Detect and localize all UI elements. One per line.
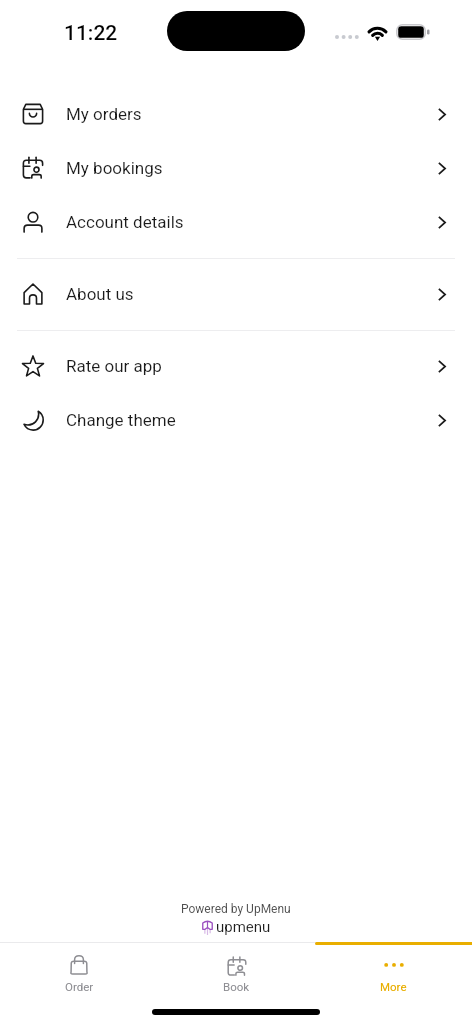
button[interactable]: Book <box>158 942 315 1000</box>
staticText: Change theme <box>66 410 176 430</box>
staticText: upmenu <box>216 918 271 936</box>
staticText: My orders <box>66 104 142 124</box>
staticText: Powered by UpMenu <box>181 902 291 916</box>
staticText: Order <box>65 980 94 993</box>
staticText: Rate our app <box>66 356 162 376</box>
staticText: My bookings <box>66 158 163 178</box>
button[interactable]: My bookings <box>0 141 472 195</box>
button[interactable]: Rate our app <box>0 339 472 393</box>
button[interactable]: More <box>315 942 472 1000</box>
staticText: Book <box>223 980 250 993</box>
staticText: 11:22 <box>64 21 118 46</box>
button[interactable]: My orders <box>0 87 472 141</box>
staticText: More <box>380 980 407 993</box>
button[interactable]: About us <box>0 267 472 321</box>
button[interactable]: Account details <box>0 195 472 249</box>
staticText: Account details <box>66 212 184 232</box>
button[interactable]: Order <box>0 942 158 1000</box>
staticText: About us <box>66 284 134 304</box>
button[interactable]: Change theme <box>0 393 472 447</box>
